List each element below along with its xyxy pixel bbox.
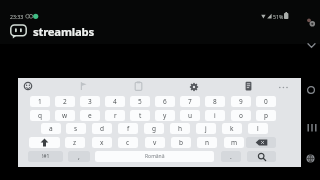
- button[interactable]: [307, 43, 316, 49]
- button[interactable]: q: [30, 110, 50, 121]
- button[interactable]: v: [145, 137, 165, 148]
- staticText: h: [178, 124, 183, 133]
- staticText: k: [230, 124, 234, 133]
- button[interactable]: 1: [30, 96, 50, 107]
- staticText: p: [264, 111, 268, 120]
- staticText: c: [126, 138, 130, 147]
- button[interactable]: 3: [80, 96, 100, 107]
- staticText: 2: [63, 97, 67, 106]
- staticText: u: [188, 111, 193, 120]
- staticText: q: [38, 111, 42, 120]
- button[interactable]: s: [66, 123, 86, 134]
- staticText: 8: [213, 97, 217, 106]
- button[interactable]: Română: [95, 151, 214, 162]
- button[interactable]: t: [130, 110, 150, 121]
- button[interactable]: 7: [180, 96, 200, 107]
- staticText: v: [153, 138, 157, 147]
- button[interactable]: d: [92, 123, 112, 134]
- staticText: r: [114, 111, 117, 120]
- button[interactable]: [79, 81, 88, 91]
- staticText: 1: [38, 97, 42, 106]
- button[interactable]: j: [196, 123, 216, 134]
- staticText: 9: [239, 97, 243, 106]
- staticText: Română: [145, 153, 165, 160]
- button[interactable]: y: [155, 110, 175, 121]
- button[interactable]: m: [224, 137, 244, 148]
- button[interactable]: w: [55, 110, 75, 121]
- button[interactable]: g: [144, 123, 164, 134]
- button[interactable]: h: [170, 123, 190, 134]
- button[interactable]: streamlabs: [9, 23, 107, 41]
- staticText: x: [100, 138, 104, 147]
- staticText: t: [139, 111, 142, 120]
- button[interactable]: b: [171, 137, 191, 148]
- button[interactable]: 6: [155, 96, 175, 107]
- staticText: 5: [138, 97, 142, 106]
- staticText: j: [205, 124, 207, 133]
- staticText: z: [73, 138, 77, 147]
- button[interactable]: n: [197, 137, 217, 148]
- staticText: 51%: [273, 13, 284, 20]
- button[interactable]: [306, 85, 316, 95]
- button[interactable]: 8: [205, 96, 225, 107]
- button[interactable]: [134, 81, 143, 91]
- staticText: !#1: [42, 153, 50, 160]
- staticText: .: [230, 152, 232, 161]
- button[interactable]: u: [180, 110, 200, 121]
- staticText: 0: [264, 97, 268, 106]
- staticText: 3: [88, 97, 92, 106]
- button[interactable]: ,: [68, 151, 90, 162]
- button[interactable]: [278, 85, 289, 90]
- button[interactable]: [23, 81, 33, 91]
- button[interactable]: [247, 151, 276, 162]
- button[interactable]: e: [80, 110, 100, 121]
- button[interactable]: [306, 123, 318, 133]
- staticText: s: [74, 124, 78, 133]
- button[interactable]: p: [256, 110, 276, 121]
- button[interactable]: c: [118, 137, 138, 148]
- staticText: 23:33: [10, 13, 24, 20]
- button[interactable]: 2: [55, 96, 75, 107]
- staticText: d: [100, 124, 104, 133]
- staticText: streamlabs: [33, 24, 94, 39]
- staticText: w: [62, 111, 68, 120]
- button[interactable]: .: [221, 151, 241, 162]
- staticText: o: [239, 111, 243, 120]
- button[interactable]: a: [41, 123, 61, 134]
- button[interactable]: 9: [231, 96, 251, 107]
- button[interactable]: [244, 81, 253, 91]
- button[interactable]: r: [105, 110, 125, 121]
- button[interactable]: 5: [130, 96, 150, 107]
- staticText: y: [163, 111, 167, 120]
- button[interactable]: [246, 137, 276, 148]
- staticText: 6: [163, 97, 167, 106]
- button[interactable]: x: [92, 137, 112, 148]
- staticText: f: [127, 124, 130, 133]
- staticText: 4: [113, 97, 117, 106]
- button[interactable]: !#1: [28, 151, 63, 162]
- button[interactable]: [29, 137, 60, 148]
- button[interactable]: f: [118, 123, 138, 134]
- button[interactable]: l: [248, 123, 268, 134]
- button[interactable]: 4: [105, 96, 125, 107]
- button[interactable]: k: [222, 123, 242, 134]
- staticText: l: [257, 124, 259, 133]
- staticText: a: [49, 124, 53, 133]
- staticText: ,: [78, 152, 80, 161]
- button[interactable]: [189, 82, 199, 92]
- button[interactable]: 0: [256, 96, 276, 107]
- staticText: g: [152, 124, 156, 133]
- staticText: b: [179, 138, 183, 147]
- staticText: m: [231, 138, 238, 147]
- button[interactable]: i: [205, 110, 225, 121]
- button[interactable]: z: [65, 137, 85, 148]
- staticText: n: [205, 138, 210, 147]
- staticText: i: [214, 111, 216, 120]
- button[interactable]: o: [231, 110, 251, 121]
- staticText: 7: [188, 97, 192, 106]
- button[interactable]: [306, 154, 315, 163]
- staticText: e: [88, 111, 92, 120]
